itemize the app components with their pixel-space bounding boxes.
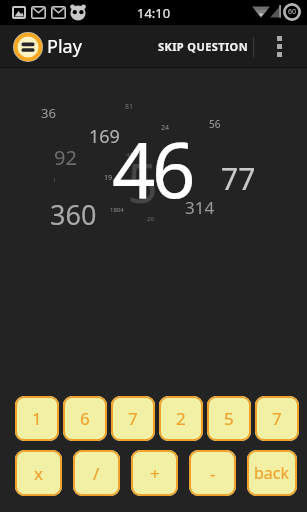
staticText: 49	[126, 151, 133, 159]
button[interactable]: -	[189, 450, 236, 496]
staticText: 19	[104, 173, 113, 183]
staticText: 1804	[110, 206, 124, 214]
button[interactable]: 1	[15, 396, 59, 441]
button[interactable]: 7	[111, 396, 155, 441]
button[interactable]: 5	[207, 396, 251, 441]
staticText: 60	[288, 7, 297, 17]
staticText: 92	[54, 144, 77, 171]
staticText: x	[34, 462, 43, 485]
staticText: back	[254, 462, 290, 484]
staticText: 314	[185, 196, 215, 219]
staticText: 5	[127, 145, 158, 219]
staticText: SKIP QUESTION	[158, 39, 249, 54]
staticText: 1	[32, 407, 42, 430]
staticText: 2	[176, 407, 186, 430]
button[interactable]	[251, 25, 307, 68]
staticText: 5	[224, 407, 234, 430]
staticText: -	[210, 462, 216, 485]
staticText: 169	[89, 124, 120, 149]
staticText: 14:10	[137, 4, 171, 22]
staticText: 1	[53, 177, 56, 184]
button[interactable]: Play	[0, 25, 82, 68]
button[interactable]: SKIP QUESTION	[158, 25, 249, 68]
staticText: 46	[112, 117, 192, 221]
staticText: 7	[272, 407, 282, 430]
staticText: 56	[209, 117, 221, 131]
button[interactable]: back	[247, 450, 297, 496]
staticText: /	[93, 462, 100, 485]
button[interactable]: 7	[255, 396, 299, 441]
button[interactable]: +	[131, 450, 178, 496]
staticText: 77	[221, 158, 256, 199]
button[interactable]: /	[73, 450, 120, 496]
staticText: +	[150, 462, 160, 485]
staticText: 20	[147, 215, 154, 223]
staticText: 360	[50, 196, 97, 233]
button[interactable]: 6	[63, 396, 107, 441]
staticText: 6	[80, 407, 90, 430]
button[interactable]: x	[15, 450, 62, 496]
staticText: 81	[125, 102, 134, 112]
staticText: 36	[41, 104, 56, 122]
staticText: 7	[128, 407, 138, 430]
button[interactable]: 2	[159, 396, 203, 441]
staticText: 24	[161, 123, 170, 133]
staticText: Play	[47, 34, 82, 59]
